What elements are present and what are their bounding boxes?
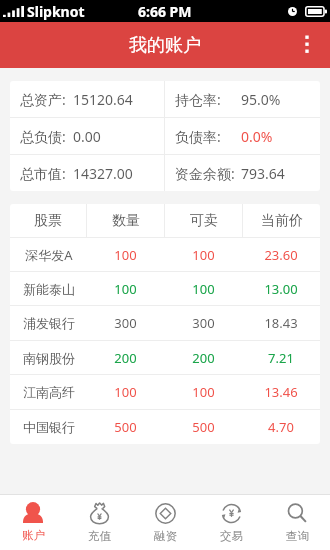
staticText: 总资产:: [20, 90, 66, 109]
staticText: 当前价: [261, 212, 303, 230]
staticText: 793.64: [241, 164, 285, 183]
staticText: 股票: [34, 212, 62, 230]
button[interactable]: 新能泰山: [10, 272, 320, 305]
staticText: 融资: [154, 529, 177, 543]
staticText: 18.43: [264, 314, 298, 332]
staticText: 23.60: [264, 246, 298, 264]
button[interactable]: 充值: [66, 495, 132, 550]
button[interactable]: 浦发银行: [10, 306, 320, 340]
staticText: 交易: [220, 529, 243, 543]
staticText: 500: [114, 418, 137, 436]
staticText: 100: [114, 246, 137, 264]
staticText: 持仓率:: [175, 90, 221, 109]
button[interactable]: 中国银行: [10, 410, 320, 444]
staticText: 新能泰山: [23, 281, 75, 297]
staticText: 300: [192, 314, 215, 332]
button[interactable]: 融资: [132, 495, 198, 550]
staticText: 200: [114, 349, 137, 367]
staticText: 500: [192, 418, 215, 436]
staticText: 充值: [88, 529, 111, 543]
staticText: 100: [192, 246, 215, 264]
staticText: 数量: [112, 212, 140, 230]
staticText: Slipknot: [27, 2, 85, 21]
button[interactable]: 南钢股份: [10, 341, 320, 374]
staticText: 浦发银行: [23, 315, 75, 331]
button[interactable]: 交易: [198, 495, 264, 550]
staticText: 0.00: [73, 127, 101, 146]
staticText: 江南高纤: [23, 384, 75, 400]
staticText: 总市值:: [20, 164, 66, 183]
staticText: 6:66 PM: [138, 2, 192, 21]
button[interactable]: 深华发A: [10, 238, 320, 271]
staticText: 资金余额:: [175, 164, 235, 183]
staticText: 15120.64: [73, 90, 133, 109]
button[interactable]: 查询: [264, 495, 330, 550]
staticText: 中国银行: [23, 419, 75, 435]
staticText: 0.0%: [241, 127, 273, 146]
staticText: 4.70: [268, 418, 294, 436]
staticText: 7.21: [268, 349, 294, 367]
staticText: 可卖: [190, 212, 218, 230]
staticText: 我的账户: [129, 34, 201, 57]
staticText: 负债率:: [175, 127, 221, 146]
staticText: 深华发A: [25, 246, 73, 264]
staticText: 100: [192, 383, 215, 401]
staticText: 13.00: [264, 280, 298, 298]
staticText: 100: [114, 280, 137, 298]
staticText: 13.46: [264, 383, 298, 401]
staticText: 14327.00: [73, 164, 133, 183]
button[interactable]: 江南高纤: [10, 375, 320, 409]
staticText: 总负债:: [20, 127, 66, 146]
staticText: 100: [192, 280, 215, 298]
staticText: 账户: [22, 528, 45, 542]
button[interactable]: More options: [293, 31, 321, 59]
staticText: 300: [114, 314, 137, 332]
staticText: 95.0%: [241, 90, 281, 109]
button[interactable]: 账户: [0, 495, 66, 550]
staticText: 100: [114, 383, 137, 401]
staticText: 查询: [286, 529, 309, 543]
staticText: 200: [192, 349, 215, 367]
staticText: 南钢股份: [23, 350, 75, 366]
